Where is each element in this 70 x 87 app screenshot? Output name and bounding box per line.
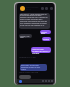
staticText: Hey there ☀ I was looking over all of th… xyxy=(20,13,48,27)
staticText: I will send the updated file over in a m… xyxy=(32,48,50,54)
button[interactable] xyxy=(20,64,47,71)
staticText: Yesterday at 4:12 PM xyxy=(19,56,37,58)
staticText: Sounds good xyxy=(41,31,50,35)
staticText: Typing a reply right now... xyxy=(19,71,44,73)
button[interactable]: Call xyxy=(45,7,48,10)
staticText: Ada Lovelace xyxy=(26,6,40,9)
button[interactable]: Attach file xyxy=(19,80,22,83)
button[interactable] xyxy=(19,75,31,79)
button[interactable]: More options xyxy=(50,7,53,10)
button[interactable] xyxy=(19,13,50,29)
button[interactable]: Search xyxy=(41,7,44,10)
button[interactable] xyxy=(40,30,51,34)
button[interactable] xyxy=(19,34,32,38)
staticText: Thanks, talk later xyxy=(20,35,31,39)
button[interactable] xyxy=(31,47,51,53)
staticText: Perfect! xyxy=(43,38,50,40)
button[interactable] xyxy=(42,37,51,41)
button[interactable] xyxy=(17,79,54,83)
staticText: Reminder: the project deadline moves to … xyxy=(21,64,45,70)
button[interactable]: Profile xyxy=(20,6,25,11)
